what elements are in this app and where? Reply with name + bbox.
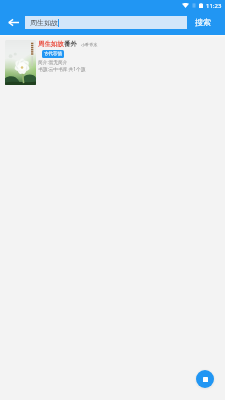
staticText: 周生如故	[38, 40, 64, 48]
staticText: 番外	[64, 40, 77, 48]
button[interactable]: 搜索	[193, 14, 213, 30]
staticText: 书源:云中书库 共1个源	[38, 66, 86, 72]
staticText: 简介:暂无简介	[38, 59, 68, 65]
staticText: 搜索	[195, 17, 211, 27]
staticText: 周生如故	[30, 18, 58, 27]
button[interactable]: Stop	[196, 370, 214, 388]
button[interactable]: Back	[2, 11, 24, 33]
staticText: 11:23	[206, 2, 222, 10]
staticText: 古代言情	[44, 51, 62, 57]
staticText: 小番香水	[81, 42, 98, 47]
button[interactable]: 周生如故	[25, 16, 187, 29]
button[interactable]: 周生如故	[0, 38, 225, 88]
